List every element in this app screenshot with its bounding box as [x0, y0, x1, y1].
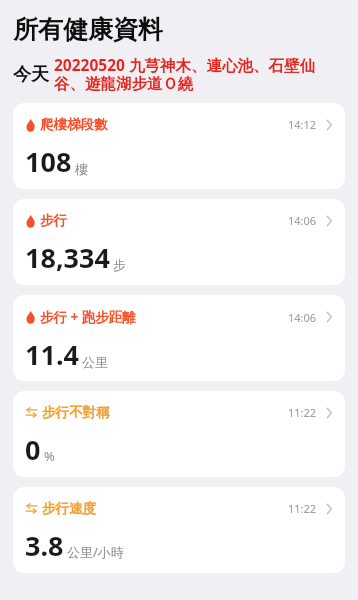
staticText: 步行	[40, 212, 67, 229]
button[interactable]: 步行	[13, 199, 345, 285]
staticText: 11.4	[25, 336, 79, 373]
staticText: 樓	[75, 161, 88, 177]
staticText: 18,334	[25, 239, 110, 276]
staticText: 步	[113, 257, 126, 273]
button[interactable]: 步行速度	[13, 487, 345, 573]
staticText: 14:06	[288, 310, 317, 325]
button[interactable]: 步行 + 跑步距離	[13, 295, 345, 381]
staticText: 所有健康資料	[13, 14, 163, 45]
staticText: 20220520 九芎神木、連心池、石壁仙谷、遊龍湖步道Ｏ繞	[54, 54, 345, 94]
button[interactable]: 爬樓梯段數	[13, 103, 345, 189]
staticText: 11:22	[288, 405, 317, 420]
staticText: 今天	[13, 63, 49, 86]
staticText: 步行 + 跑步距離	[40, 308, 136, 326]
button[interactable]: 步行不對稱	[13, 391, 345, 477]
staticText: 14:06	[288, 213, 317, 228]
staticText: 3.8	[25, 527, 64, 564]
staticText: 公里	[82, 354, 108, 370]
staticText: 14:12	[288, 117, 317, 132]
staticText: 0	[25, 431, 41, 468]
staticText: 11:22	[288, 501, 317, 516]
staticText: %	[44, 447, 55, 465]
staticText: 爬樓梯段數	[40, 116, 108, 133]
staticText: 108	[25, 143, 72, 180]
staticText: 步行速度	[42, 500, 96, 517]
staticText: 步行不對稱	[42, 404, 110, 421]
staticText: 公里/小時	[67, 543, 124, 561]
